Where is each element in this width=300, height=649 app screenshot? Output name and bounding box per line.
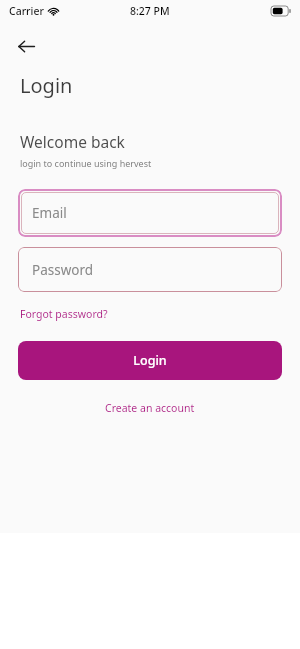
staticText: Password	[32, 261, 94, 279]
button[interactable]: Login	[18, 341, 282, 380]
button[interactable]: Forgot password?	[20, 305, 108, 323]
staticText: Welcome back	[20, 131, 125, 152]
staticText: Create an account	[105, 401, 195, 415]
button[interactable]: Password	[18, 247, 282, 292]
staticText: Login	[133, 352, 167, 369]
staticText: Login	[20, 72, 73, 99]
staticText: Email	[32, 204, 67, 222]
staticText: login to continue using hervest	[20, 157, 152, 169]
button[interactable]: Back	[10, 30, 42, 62]
staticText: Forgot password?	[20, 307, 108, 321]
staticText: Carrier	[9, 4, 44, 18]
button[interactable]: Email	[21, 192, 279, 234]
staticText: 8:27 PM	[130, 4, 170, 18]
button[interactable]: Create an account	[97, 398, 203, 418]
